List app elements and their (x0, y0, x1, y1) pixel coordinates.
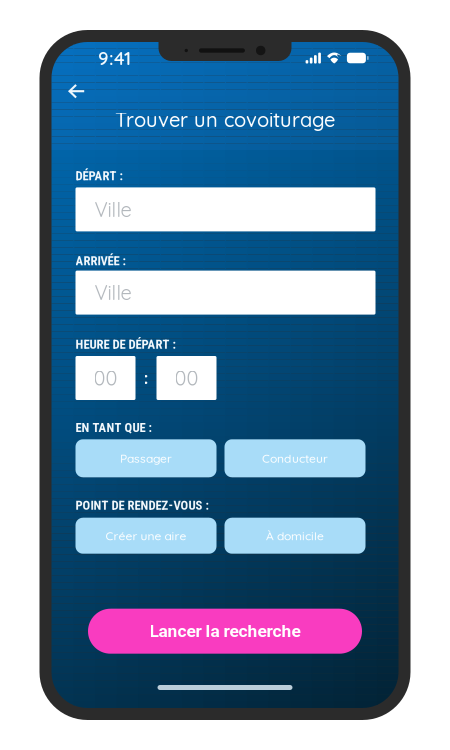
staticText: 9:41 (98, 46, 131, 70)
button[interactable]: Passager (75, 439, 216, 477)
staticText: Créer une aire (105, 528, 186, 543)
button[interactable]: Retour (60, 77, 93, 105)
staticText: 00 (174, 365, 198, 390)
staticText: POINT DE RENDEZ-VOUS : (75, 498, 208, 513)
staticText: À domicile (266, 528, 324, 543)
button[interactable]: Lancer la recherche (88, 609, 362, 654)
staticText: EN TANT QUE : (75, 420, 151, 435)
staticText: Passager (120, 451, 172, 466)
staticText: : (143, 368, 148, 388)
staticText: Trouver un covoiturage (115, 107, 335, 132)
staticText: HEURE DE DÉPART : (75, 337, 175, 352)
staticText: DÉPART : (75, 168, 122, 183)
button[interactable]: Créer une aire (75, 518, 216, 554)
button[interactable]: Conducteur (224, 439, 365, 477)
staticText: 00 (93, 365, 117, 390)
staticText: ARRIVÉE : (75, 253, 125, 268)
staticText: Conducteur (262, 451, 328, 466)
staticText: Ville (94, 280, 131, 305)
button[interactable]: À domicile (224, 518, 365, 554)
staticText: Lancer la recherche (149, 621, 300, 641)
staticText: Ville (94, 197, 131, 222)
